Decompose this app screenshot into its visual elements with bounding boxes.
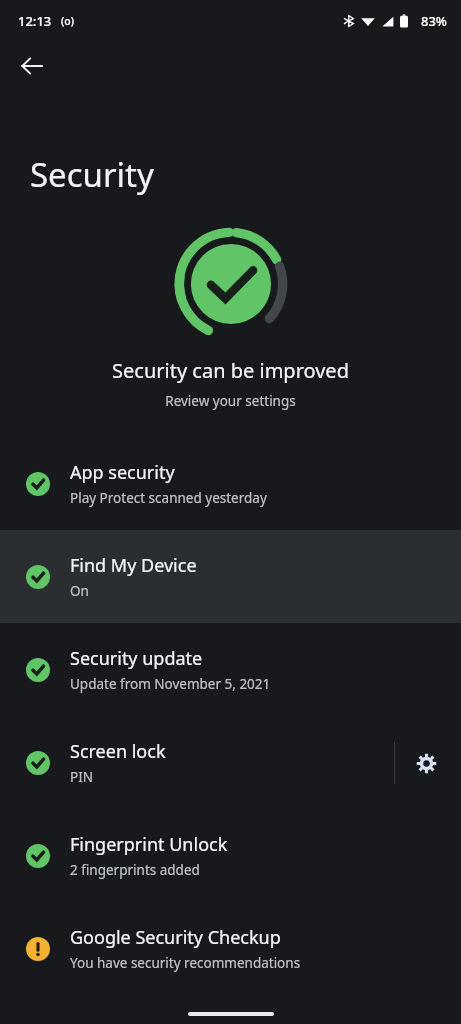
staticText: Play Protect scanned yesterday bbox=[70, 489, 267, 507]
staticText: 12:13 bbox=[18, 12, 52, 30]
staticText: Security can be improved bbox=[112, 357, 349, 384]
button[interactable]: Fingerprint Unlock bbox=[0, 809, 461, 902]
staticText: Update from November 5, 2021 bbox=[70, 675, 271, 693]
staticText: 83% bbox=[421, 12, 447, 30]
button[interactable]: Security update bbox=[0, 623, 461, 716]
staticText: (o) bbox=[61, 14, 74, 28]
button[interactable]: Screen lock settings bbox=[408, 745, 444, 781]
button[interactable]: Find My Device bbox=[0, 530, 461, 623]
button[interactable]: App security bbox=[0, 437, 461, 530]
staticText: Security update bbox=[70, 646, 203, 671]
staticText: Review your settings bbox=[165, 392, 296, 410]
staticText: Fingerprint Unlock bbox=[70, 832, 228, 857]
staticText: Security bbox=[30, 152, 154, 197]
staticText: You have security recommendations bbox=[70, 954, 301, 972]
staticText: 2 fingerprints added bbox=[70, 861, 200, 879]
button[interactable]: Screen lock bbox=[0, 716, 461, 809]
staticText: Screen lock bbox=[70, 739, 166, 764]
button[interactable]: Back bbox=[12, 46, 52, 86]
staticText: Find My Device bbox=[70, 553, 197, 578]
staticText: PIN bbox=[70, 768, 94, 786]
staticText: App security bbox=[70, 460, 175, 485]
button[interactable]: Google Security Checkup bbox=[0, 902, 461, 995]
staticText: Google Security Checkup bbox=[70, 925, 281, 950]
staticText: On bbox=[70, 582, 89, 600]
